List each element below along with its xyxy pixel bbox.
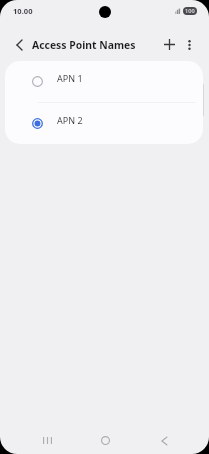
button[interactable]: APN 2 [5,103,203,144]
staticText: 10.00 [13,6,33,16]
button[interactable]: Recent apps [33,426,62,454]
button[interactable]: Add [155,30,184,59]
button[interactable]: Back [150,426,179,454]
staticText: APN 2 [57,114,83,126]
button[interactable]: Navigate up [5,30,34,59]
button[interactable]: Home [91,426,120,454]
staticText: Access Point Names [32,38,136,52]
staticText: APN 1 [57,72,83,84]
staticText: 100 [185,7,195,15]
button[interactable]: More options [175,30,204,59]
button[interactable]: APN 1 [5,61,203,102]
